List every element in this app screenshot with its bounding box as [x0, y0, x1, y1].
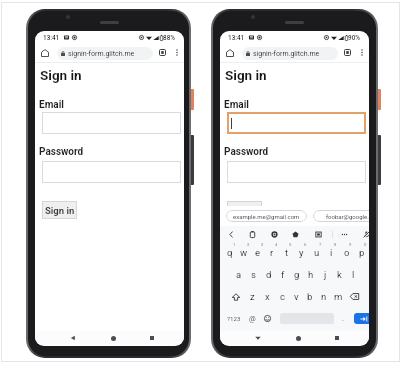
staticText: l — [352, 269, 355, 280]
staticText: 90% — [348, 34, 360, 42]
button[interactable]: Image — [313, 229, 324, 240]
button[interactable]: Stickers — [290, 229, 301, 240]
button[interactable]: f — [276, 263, 290, 285]
staticText: 7 — [319, 242, 322, 247]
staticText: g — [294, 269, 300, 280]
button[interactable]: v — [289, 286, 303, 307]
button[interactable]: Home — [39, 47, 50, 58]
button[interactable]: Settings — [269, 229, 280, 240]
button[interactable]: Home — [105, 331, 121, 345]
button[interactable]: c — [275, 286, 289, 307]
button[interactable]: foobar@google.com — [313, 210, 369, 222]
button[interactable] — [227, 161, 366, 183]
button[interactable]: j — [318, 263, 332, 285]
staticText: t — [285, 247, 289, 258]
staticText: w — [240, 247, 248, 258]
staticText: Sign in — [230, 205, 260, 216]
button[interactable]: 7 — [309, 240, 324, 262]
staticText: signin-form.glitch.me — [68, 50, 135, 58]
button[interactable]: Sign in — [227, 201, 262, 219]
button[interactable]: Hide keyboard — [250, 331, 266, 345]
staticText: 8 — [334, 242, 337, 247]
button[interactable]: Next — [354, 313, 369, 324]
button[interactable]: Home — [290, 331, 306, 345]
button[interactable]: Clipboard — [247, 229, 258, 240]
staticText: m — [334, 291, 343, 302]
staticText: 4 — [275, 242, 278, 247]
button[interactable]: 3 — [251, 240, 265, 262]
button[interactable]: 5 — [279, 240, 294, 262]
staticText: . — [342, 314, 344, 323]
button[interactable]: d — [261, 263, 276, 285]
staticText: h — [308, 269, 314, 280]
staticText: f — [281, 269, 285, 280]
button[interactable]: k — [332, 263, 346, 285]
button[interactable] — [227, 112, 366, 134]
button[interactable]: Recents — [144, 331, 160, 345]
staticText: 5 — [289, 242, 292, 247]
button[interactable]: More options — [171, 47, 182, 58]
button[interactable]: b — [303, 286, 317, 307]
button[interactable] — [42, 112, 181, 134]
staticText: 13:41 — [228, 34, 245, 42]
button[interactable]: m — [331, 286, 345, 307]
staticText: q — [227, 247, 233, 258]
staticText: 6 — [304, 242, 307, 247]
button[interactable]: 8 — [324, 240, 339, 262]
button[interactable]: Backspace — [345, 286, 364, 307]
button[interactable]: 0 — [354, 240, 369, 262]
button[interactable]: Tabs — [157, 47, 168, 58]
button[interactable]: Sign in — [42, 201, 77, 219]
button[interactable]: z — [245, 286, 260, 307]
button[interactable]: n — [317, 286, 331, 307]
button[interactable]: x — [260, 286, 275, 307]
staticText: y — [299, 247, 304, 258]
staticText: u — [314, 247, 320, 258]
button[interactable]: a — [231, 263, 246, 285]
button[interactable]: signin-form.glitch.me — [57, 47, 153, 60]
staticText: 13:41 — [43, 34, 60, 42]
staticText: j — [324, 269, 327, 280]
staticText: Sign in — [45, 205, 75, 216]
button[interactable]: . — [337, 308, 349, 329]
staticText: example.me@gmail.com — [233, 213, 300, 220]
button[interactable]: 9 — [339, 240, 354, 262]
button[interactable]: Home — [224, 47, 235, 58]
button[interactable] — [42, 161, 181, 183]
button[interactable]: Tabs — [342, 47, 353, 58]
button[interactable]: g — [290, 263, 304, 285]
staticText: e — [255, 247, 261, 258]
button[interactable]: h — [304, 263, 318, 285]
staticText: 2 — [247, 242, 250, 247]
staticText: c — [280, 291, 285, 302]
staticText: ?123 — [227, 315, 241, 322]
staticText: @ — [249, 314, 256, 323]
button[interactable]: Back — [65, 331, 81, 345]
staticText: 9 — [349, 242, 352, 247]
button[interactable]: Back — [226, 229, 237, 240]
staticText: k — [337, 269, 342, 280]
staticText: d — [266, 269, 272, 280]
staticText: 3 — [261, 242, 264, 247]
staticText: foobar@google.com — [326, 213, 369, 220]
button[interactable]: Recents — [329, 331, 345, 345]
button[interactable]: ?123 — [226, 308, 242, 329]
button[interactable]: l — [346, 263, 360, 285]
button[interactable]: 2 — [237, 240, 251, 262]
button[interactable]: Shift — [227, 286, 245, 307]
button[interactable]: s — [246, 263, 261, 285]
staticText: i — [330, 247, 333, 258]
staticText: 0 — [364, 242, 367, 247]
button[interactable]: Emoji — [261, 308, 273, 329]
button[interactable]: More — [339, 229, 350, 240]
button[interactable]: 6 — [294, 240, 309, 262]
button[interactable]: 1 — [223, 240, 237, 262]
button[interactable]: 4 — [265, 240, 279, 262]
button[interactable]: Mic off — [361, 229, 369, 240]
button[interactable]: @ — [246, 308, 258, 329]
button[interactable]: example.me@gmail.com — [226, 210, 307, 222]
staticText: Password — [224, 146, 269, 158]
button[interactable]: signin-form.glitch.me — [242, 47, 338, 60]
button[interactable]: More options — [356, 47, 367, 58]
